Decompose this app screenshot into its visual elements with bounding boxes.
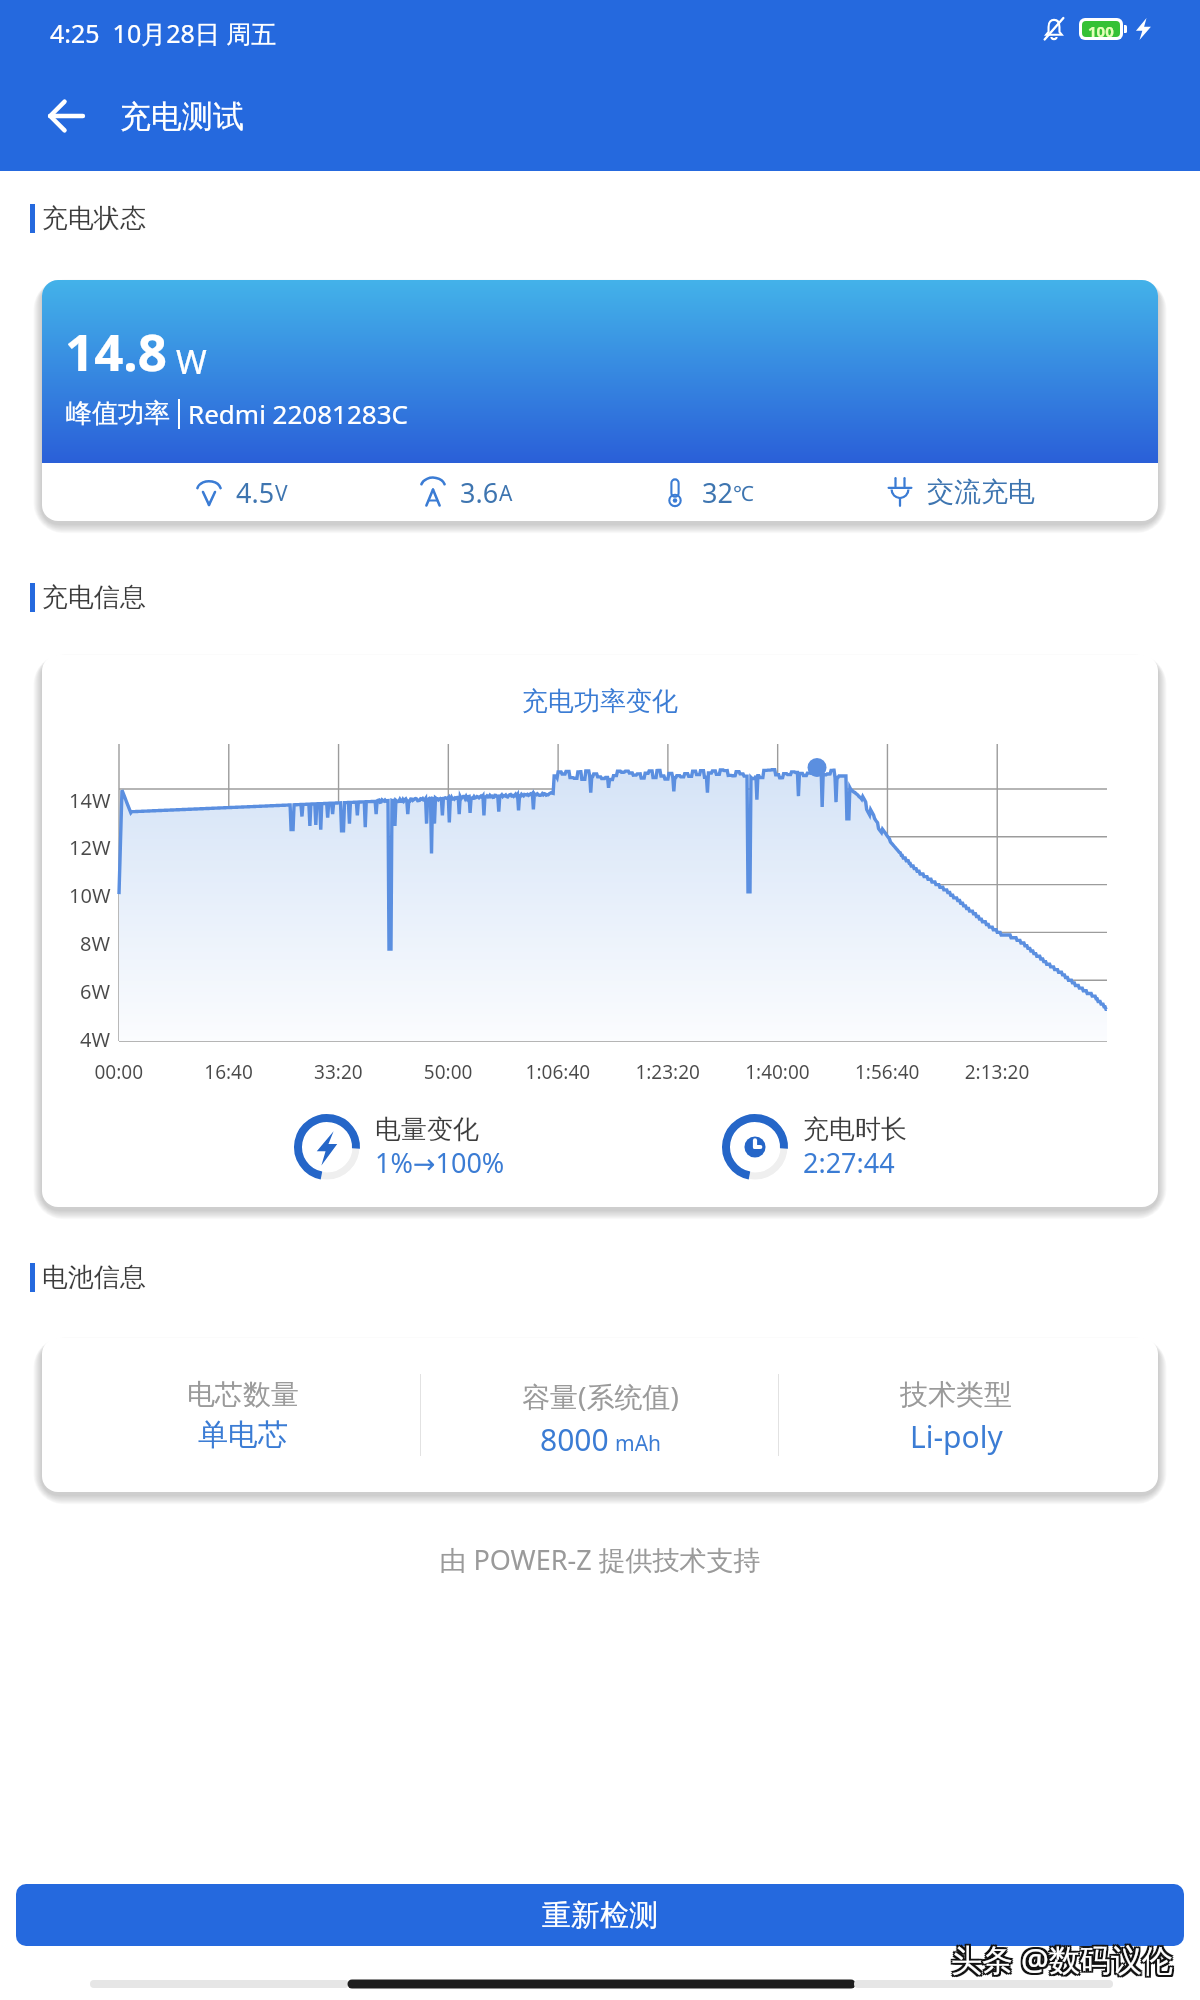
staticText: 电芯数量 [187, 1377, 299, 1412]
staticText: 3.6 [460, 474, 499, 511]
staticText: A [499, 479, 513, 508]
staticText: 充电信息 [42, 581, 146, 614]
staticText: 技术类型 [900, 1377, 1012, 1412]
staticText: ℃ [733, 479, 754, 508]
staticText: 2:27:44 [803, 1144, 895, 1181]
button[interactable]: 充电时长 [722, 1102, 943, 1192]
staticText: 电量变化 [375, 1113, 479, 1146]
staticText: 充电测试 [120, 97, 244, 136]
staticText: 8000 [540, 1419, 609, 1460]
staticText: 交流充电 [927, 475, 1035, 509]
staticText: Li-poly [910, 1416, 1003, 1457]
staticText: 充电时长 [803, 1113, 907, 1146]
staticText: 电池信息 [42, 1261, 146, 1294]
button[interactable]: 电芯数量 [103, 1377, 383, 1454]
staticText: 头条 @数码议伦 [951, 1938, 1173, 1980]
button[interactable]: Back [34, 84, 98, 148]
staticText: 头条 @数码议伦 [953, 1940, 1175, 1982]
button[interactable]: 容量(系统值) [460, 1377, 740, 1460]
staticText: 单电芯 [198, 1416, 288, 1454]
staticText: 充电状态 [42, 202, 146, 235]
staticText: 头条 @数码议伦 [949, 1936, 1171, 1978]
staticText: 头条 @数码议伦 [953, 1938, 1175, 1980]
staticText: W [176, 339, 207, 384]
staticText: 重新检测 [542, 1897, 658, 1934]
staticText: Redmi 22081283C [188, 396, 409, 431]
staticText: 头条 @数码议伦 [949, 1940, 1171, 1982]
staticText: 14.8 [65, 316, 167, 385]
button[interactable]: 技术类型 [816, 1377, 1096, 1457]
staticText: 头条 @数码议伦 [953, 1936, 1175, 1978]
staticText: 峰值功率 [66, 397, 170, 430]
staticText: 头条 @数码议伦 [951, 1940, 1173, 1982]
staticText: mAh [615, 1429, 662, 1458]
button[interactable]: 3.6 [418, 463, 537, 521]
staticText: V [275, 479, 288, 508]
staticText: 头条 @数码议伦 [951, 1936, 1173, 1978]
button[interactable]: 交流充电 [885, 463, 1059, 521]
button[interactable]: 电量变化 [294, 1102, 515, 1192]
staticText: 容量(系统值) [522, 1377, 679, 1415]
button[interactable]: 32 [660, 463, 778, 521]
staticText: 1%→100% [375, 1144, 505, 1181]
staticText: 4:25 10月28日 周五 [50, 16, 277, 50]
staticText: 由 POWER-Z 提供技术支持 [0, 1541, 1200, 1578]
staticText: 32 [702, 474, 733, 511]
staticText: 头条 @数码议伦 [949, 1938, 1171, 1980]
staticText: 充电功率变化 [42, 685, 1158, 718]
button[interactable]: 4.5 [194, 463, 312, 521]
button[interactable]: 重新检测 [16, 1884, 1184, 1946]
staticText: 100 [1088, 21, 1114, 37]
staticText: 4.5 [236, 474, 275, 511]
